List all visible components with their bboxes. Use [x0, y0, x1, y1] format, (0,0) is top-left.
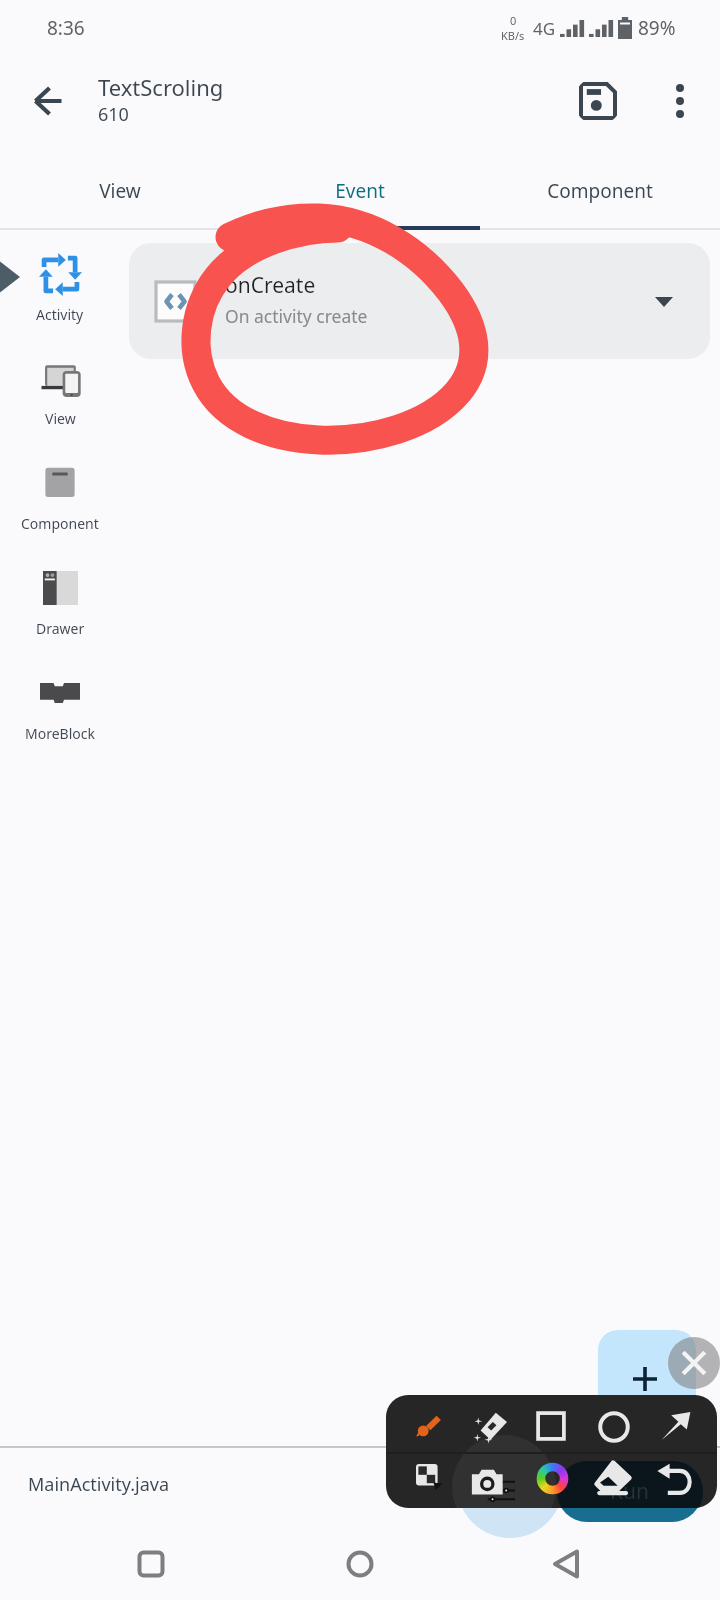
button[interactable]: Circle — [598, 1411, 630, 1443]
button[interactable]: Undo — [657, 1463, 693, 1499]
button[interactable]: Eraser — [595, 1461, 631, 1497]
staticText: Event — [335, 178, 385, 204]
staticText: Component — [21, 514, 99, 533]
button[interactable]: Arrow — [661, 1411, 691, 1441]
button[interactable]: View — [0, 155, 240, 227]
button[interactable]: Back — [543, 1540, 591, 1588]
button[interactable]: Recents — [127, 1540, 175, 1588]
staticText: MainActivity.java — [28, 1472, 170, 1497]
staticText: Drawer — [36, 619, 85, 638]
button[interactable]: Event — [240, 155, 480, 227]
staticText: Run — [610, 1477, 650, 1506]
button[interactable]: Add annotation — [598, 1330, 696, 1416]
staticText: On activity create — [225, 304, 368, 328]
staticText: MoreBlock — [25, 724, 95, 743]
staticText: 610 — [98, 102, 129, 127]
staticText: 89% — [638, 15, 676, 41]
staticText: View — [99, 178, 141, 204]
button[interactable]: Run — [557, 1461, 702, 1522]
staticText: KB/s — [501, 28, 525, 43]
button[interactable]: Layers — [413, 1461, 443, 1491]
button[interactable]: MoreBlock — [0, 663, 120, 763]
staticText: 4G — [533, 17, 556, 40]
button[interactable]: Colour — [536, 1462, 569, 1495]
staticText: 8:36 — [47, 15, 85, 41]
button[interactable]: View — [0, 348, 120, 448]
button[interactable]: Activity — [0, 243, 120, 343]
button[interactable]: Component — [480, 155, 720, 227]
button[interactable]: Back — [24, 77, 72, 125]
staticText: TextScroling — [98, 72, 224, 102]
button[interactable]: Home — [336, 1540, 384, 1588]
button[interactable]: Save — [574, 77, 622, 125]
staticText: Run — [610, 1477, 650, 1506]
button[interactable]: Screenshot settings — [471, 1461, 515, 1505]
button[interactable]: Drawer — [0, 558, 120, 658]
staticText: Activity — [36, 305, 84, 324]
button[interactable]: MainActivity.java — [0, 1448, 720, 1520]
staticText: View — [45, 409, 76, 428]
staticText: 0 — [510, 13, 517, 28]
button[interactable]: Brush — [413, 1411, 444, 1442]
button[interactable]: Close annotation tools — [668, 1337, 720, 1389]
button[interactable]: Magic eraser — [474, 1410, 507, 1443]
button[interactable]: Component — [0, 453, 120, 553]
staticText: Component — [547, 178, 653, 204]
button[interactable]: Rectangle — [536, 1411, 566, 1441]
button[interactable]: More options — [656, 77, 704, 125]
staticText: onCreate — [225, 271, 316, 300]
button[interactable]: onCreate — [129, 243, 710, 359]
